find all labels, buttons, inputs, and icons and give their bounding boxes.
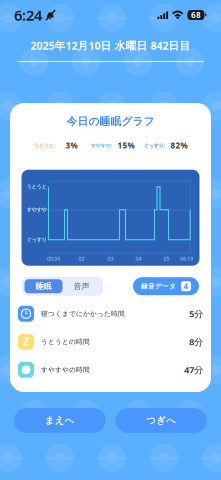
- button[interactable]: 寝つくまでにかかった時間: [10, 300, 211, 328]
- button[interactable]: 音声: [62, 279, 100, 293]
- staticText: 6:24: [14, 5, 42, 25]
- button[interactable]: Z: [10, 328, 211, 356]
- staticText: うとうと: [26, 183, 46, 190]
- staticText: ぐっすり:: [143, 142, 164, 149]
- button[interactable]: つぎへ: [115, 408, 207, 433]
- staticText: まえへ: [45, 415, 75, 426]
- staticText: 5分: [189, 307, 203, 320]
- staticText: 02: [78, 255, 84, 262]
- staticText: 47分: [184, 363, 203, 376]
- staticText: 82%: [170, 140, 187, 151]
- staticText: 4: [183, 281, 188, 291]
- staticText: 04: [135, 255, 141, 262]
- staticText: すやすや:: [90, 142, 111, 149]
- staticText: すやすや: [26, 206, 46, 213]
- staticText: 寝つくまでにかかった時間: [41, 310, 125, 318]
- staticText: ぐっすり: [26, 236, 46, 243]
- staticText: 06:19: [180, 255, 193, 262]
- button[interactable]: 睡眠: [24, 279, 62, 293]
- staticText: 68: [191, 10, 201, 20]
- staticText: Z: [23, 335, 29, 349]
- staticText: 今日の睡眠グラフ: [66, 115, 154, 128]
- staticText: つぎへ: [146, 415, 176, 426]
- button[interactable]: すやすやの時間: [10, 356, 211, 384]
- staticText: 2025年12月10日 水曜日 842日目: [30, 38, 190, 53]
- staticText: うとうとの時間: [41, 338, 90, 346]
- staticText: 15%: [117, 140, 134, 151]
- staticText: すやすやの時間: [41, 366, 90, 374]
- staticText: 05: [163, 255, 169, 262]
- button[interactable]: まえへ: [14, 408, 105, 433]
- staticText: 3%: [65, 140, 77, 151]
- staticText: 音声: [73, 281, 89, 291]
- staticText: 8分: [189, 335, 203, 348]
- staticText: 睡眠: [35, 281, 51, 291]
- button[interactable]: 録音データ: [133, 277, 199, 295]
- staticText: 03: [107, 255, 113, 262]
- staticText: 録音データ: [141, 282, 176, 290]
- staticText: 00:34: [47, 255, 60, 262]
- staticText: うとうと:: [33, 142, 54, 149]
